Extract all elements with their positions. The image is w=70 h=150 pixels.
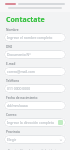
button[interactable]: Ingrese el nombre completo [4,33,66,42]
button[interactable]: Ingrese la dirección completa [4,118,66,127]
staticText: Correo [6,113,17,117]
staticText: correo@mail.com [7,69,63,74]
button[interactable]: correo@mail.com [4,67,66,76]
button[interactable]: dd/mm/aaaa [4,101,66,110]
button[interactable]: Documento N° [4,50,66,59]
button[interactable]: 011 0000 0000 [4,84,66,93]
other: Desplegar opciones [59,138,63,142]
staticText: Ingrese la dirección completa [7,120,58,125]
staticText: DNI [6,45,12,49]
staticText: Teléfono [6,79,20,83]
staticText: Contactate [6,15,45,25]
staticText: Documento N° [7,52,63,57]
staticText: Ingrese el nombre completo [7,35,63,40]
other: Buscar dirección [58,120,63,125]
staticText: Fecha de nacimiento [6,96,38,100]
staticText: Provincia [6,130,20,134]
staticText: E-mail [6,62,16,66]
staticText: Nombre [6,28,19,32]
staticText: dd/mm/aaaa [7,103,63,108]
staticText: Elegir [7,137,59,142]
button[interactable]: Elegir [4,135,66,144]
staticText: Al enviar el formulario aceptás los térm… [4,149,66,150]
staticText: 011 0000 0000 [7,86,63,91]
